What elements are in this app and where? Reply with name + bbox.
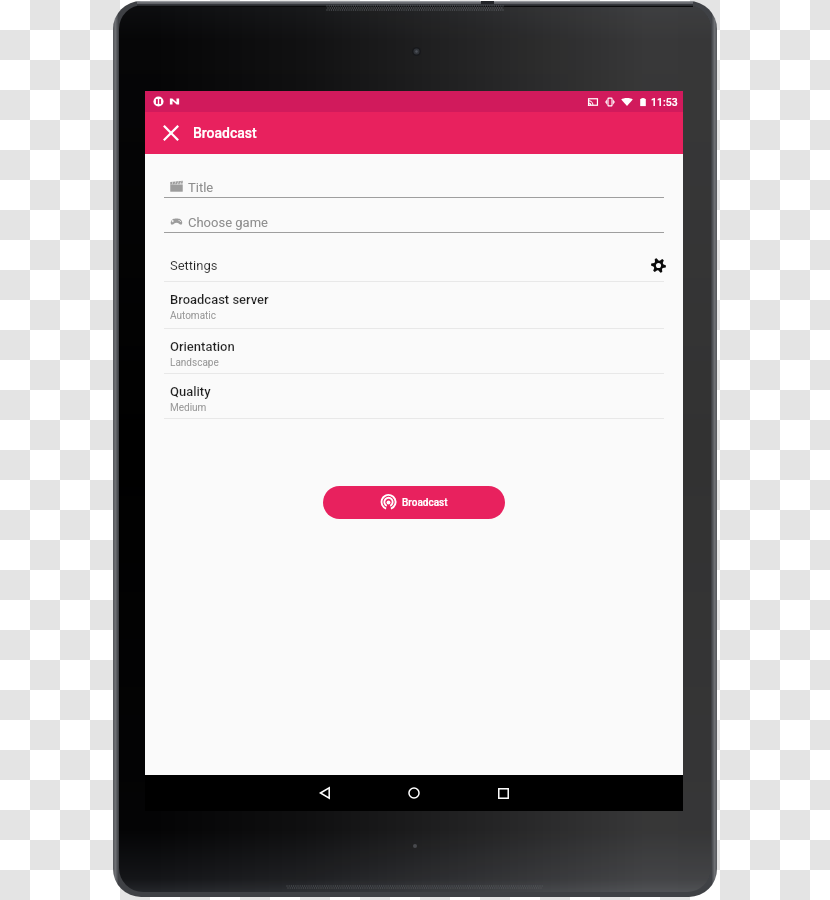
button[interactable]: Orientation <box>145 329 683 374</box>
button[interactable]: Broadcast server <box>145 282 683 329</box>
button[interactable]: Quality <box>145 374 683 419</box>
staticText: Quality <box>170 384 211 399</box>
staticText: Medium <box>170 402 207 414</box>
button[interactable]: Recent apps <box>486 776 520 810</box>
button[interactable]: Close <box>155 117 187 149</box>
staticText: Automatic <box>170 310 217 322</box>
staticText: Landscape <box>170 357 219 369</box>
button[interactable]: Broadcast <box>323 486 505 519</box>
staticText: 11:53 <box>651 96 678 108</box>
staticText: Orientation <box>170 339 235 354</box>
staticText: Title <box>188 180 214 195</box>
staticText: Settings <box>170 258 218 273</box>
staticText: Broadcast <box>193 125 257 141</box>
button[interactable]: Choose game <box>145 205 683 233</box>
button[interactable]: Home <box>397 776 431 810</box>
button[interactable]: Back <box>308 776 342 810</box>
staticText: Broadcast server <box>170 292 269 307</box>
button[interactable]: Title <box>145 170 683 198</box>
staticText: Broadcast <box>402 497 448 509</box>
button[interactable]: Settings <box>145 247 683 282</box>
staticText: Choose game <box>188 215 268 230</box>
